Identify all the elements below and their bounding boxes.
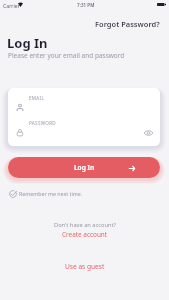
staticText: PASSWORD	[29, 120, 56, 126]
button[interactable]: Show password	[142, 126, 155, 139]
button[interactable]: Create account	[60, 229, 110, 240]
button[interactable]: EMAIL	[8, 88, 160, 117]
button[interactable]: Log In	[8, 157, 160, 178]
staticText: EMAIL	[29, 95, 45, 101]
staticText: Log In	[7, 34, 48, 52]
staticText: Create account	[62, 230, 108, 239]
button[interactable]: Forgot Password?	[94, 18, 161, 30]
staticText: Please enter your email and password	[8, 51, 125, 60]
staticText: Log In	[74, 163, 95, 172]
staticText: 7:31 PM	[77, 2, 95, 8]
staticText: Don't have an account?	[54, 221, 116, 229]
button[interactable]: Use as guest	[63, 261, 107, 272]
button[interactable]: PASSWORD	[8, 113, 160, 142]
staticText: Remember me next time.	[19, 190, 83, 197]
staticText: Use as guest	[65, 262, 105, 271]
button[interactable]: Remember me next time.	[7, 188, 87, 201]
staticText: Forgot Password?	[95, 19, 160, 29]
staticText: Carrier	[3, 2, 20, 9]
